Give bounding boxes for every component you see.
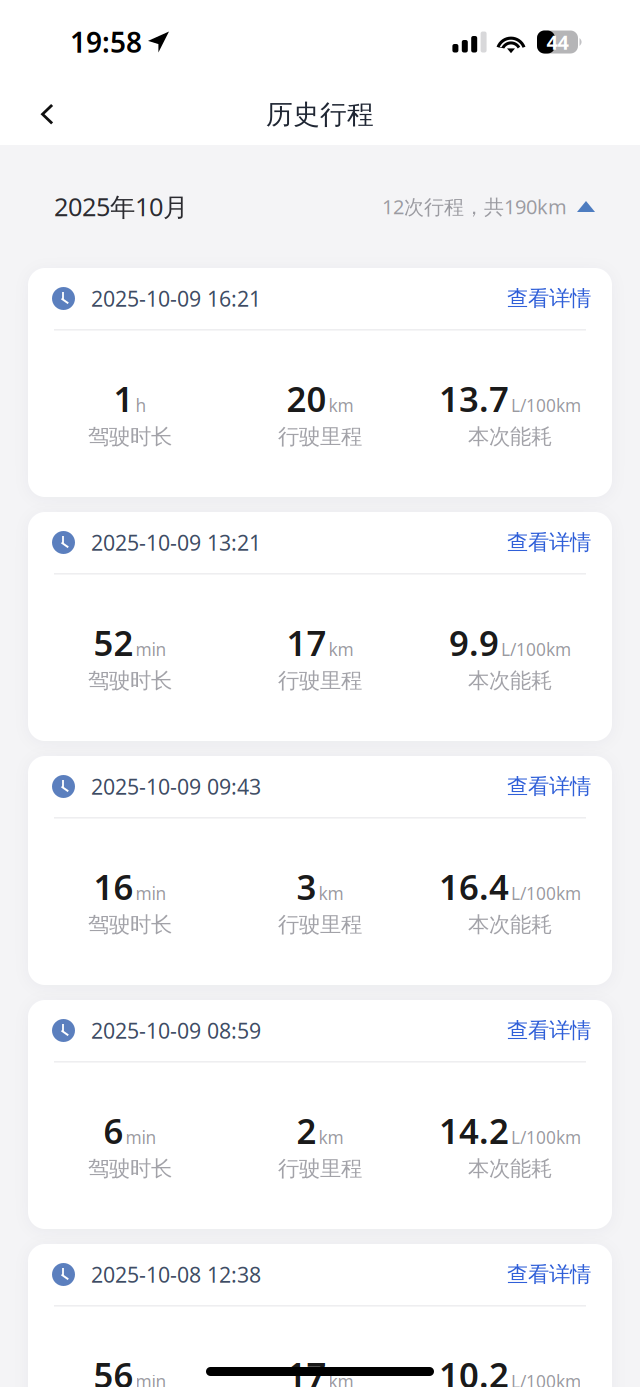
staticText: 56 [93,1352,133,1387]
staticText: 19:58 [70,23,142,61]
staticText: 6 [103,1108,123,1154]
staticText: km [318,882,343,905]
button[interactable]: 查看详情 [507,285,591,312]
staticText: 12次行程，共190km [382,193,567,220]
staticText: 本次能耗 [468,912,552,938]
staticText: 驾驶时长 [88,912,172,938]
button[interactable]: 2025-10-09 08:59 [28,1000,612,1229]
staticText: min [135,882,166,905]
staticText: 9.9 [449,620,499,666]
staticText: 行驶里程 [278,424,362,450]
staticText: 查看详情 [507,1261,591,1288]
button[interactable]: 查看详情 [507,773,591,800]
staticText: 17 [286,620,326,666]
staticText: km [328,638,353,661]
button[interactable]: 12次行程，共190km [382,193,595,220]
staticText: 2025年10月 [54,190,188,223]
staticText: 2025-10-09 09:43 [91,772,261,801]
staticText: 驾驶时长 [88,668,172,694]
staticText: 16 [93,864,133,910]
staticText: 本次能耗 [468,424,552,450]
button[interactable]: 2025-10-09 16:21 [28,268,612,497]
staticText: 52 [93,620,133,666]
staticText: 13.7 [439,376,509,422]
staticText: L/100km [511,1126,581,1149]
staticText: 1 [113,376,133,422]
staticText: 历史行程 [266,98,374,131]
staticText: L/100km [511,394,581,417]
staticText: 本次能耗 [468,668,552,694]
button[interactable]: 查看详情 [507,1017,591,1044]
staticText: 2025-10-09 16:21 [91,284,261,313]
staticText: 查看详情 [507,285,591,312]
staticText: 驾驶时长 [88,1156,172,1182]
staticText: 2025-10-09 13:21 [91,528,261,557]
button[interactable]: 2025-10-08 12:38 [28,1244,612,1387]
button[interactable]: 查看详情 [507,529,591,556]
staticText: 2025-10-08 12:38 [91,1260,261,1289]
staticText: 10.2 [439,1352,509,1387]
staticText: h [135,394,146,417]
staticText: 3 [296,864,316,910]
staticText: km [328,394,353,417]
staticText: 14.2 [439,1108,509,1154]
staticText: 查看详情 [507,773,591,800]
staticText: 行驶里程 [278,912,362,938]
staticText: 2 [296,1108,316,1154]
staticText: min [135,638,166,661]
staticText: 44 [546,29,568,55]
staticText: 20 [286,376,326,422]
staticText: km [328,1370,353,1387]
button[interactable]: 2025-10-09 09:43 [28,756,612,985]
staticText: 本次能耗 [468,1156,552,1182]
staticText: 行驶里程 [278,668,362,694]
staticText: km [318,1126,343,1149]
staticText: 2025-10-09 08:59 [91,1016,261,1045]
staticText: L/100km [501,638,571,661]
staticText: 驾驶时长 [88,424,172,450]
staticText: min [125,1126,156,1149]
staticText: 16.4 [439,864,509,910]
button[interactable]: 查看详情 [507,1261,591,1288]
staticText: 行驶里程 [278,1156,362,1182]
staticText: 查看详情 [507,1017,591,1044]
staticText: L/100km [511,882,581,905]
staticText: 17 [286,1352,326,1387]
staticText: L/100km [511,1370,581,1387]
button[interactable]: 2025-10-09 13:21 [28,512,612,741]
button[interactable]: Back [17,84,77,144]
staticText: 查看详情 [507,529,591,556]
staticText: min [135,1370,166,1387]
